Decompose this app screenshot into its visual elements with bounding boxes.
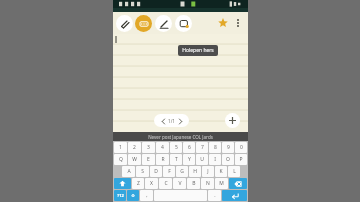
staticText: 8 (214, 144, 217, 151)
button[interactable]: T (170, 154, 182, 165)
staticText: P (239, 156, 243, 163)
button[interactable]: 9 (222, 142, 234, 153)
staticText: E (147, 156, 150, 163)
staticText: N (206, 180, 210, 187)
button[interactable]: N (201, 178, 214, 189)
button[interactable]: Favorite (215, 15, 231, 31)
button[interactable]: Eraser (116, 15, 133, 32)
staticText: 9 (227, 144, 230, 151)
button[interactable]: Symbols (114, 190, 126, 201)
button[interactable]: Q (114, 154, 127, 165)
staticText: . (214, 192, 216, 199)
button[interactable]: H (189, 166, 201, 177)
button[interactable]: O (222, 154, 234, 165)
staticText: 4 (161, 144, 164, 151)
staticText: V (178, 180, 182, 187)
button[interactable]: G (176, 166, 188, 177)
button[interactable]: U (196, 154, 208, 165)
staticText: J (207, 168, 209, 175)
button[interactable]: Next page (175, 116, 185, 126)
button[interactable]: W (128, 154, 141, 165)
button[interactable]: R (156, 154, 169, 165)
staticText: A (127, 168, 131, 175)
staticText: Y (188, 156, 191, 163)
staticText: 1/1 (168, 118, 175, 124)
button[interactable]: Previous page (158, 116, 168, 126)
button[interactable]: 8 (209, 142, 221, 153)
staticText: U (200, 156, 204, 163)
staticText: Z (137, 180, 140, 187)
staticText: ⚙ (131, 193, 135, 198)
button[interactable]: J (202, 166, 214, 177)
button[interactable]: Note (175, 15, 192, 32)
button[interactable]: 2 (128, 142, 141, 153)
button[interactable]: L (228, 166, 240, 177)
button[interactable]: More options (231, 16, 245, 30)
staticText: F (168, 168, 171, 175)
staticText: L (233, 168, 236, 175)
button[interactable]: M (215, 178, 228, 189)
staticText: D (154, 168, 158, 175)
button[interactable]: Pen (155, 15, 172, 32)
staticText: 1 (119, 144, 122, 151)
button[interactable]: 4 (156, 142, 169, 153)
button[interactable]: V (173, 178, 186, 189)
button[interactable]: P (235, 154, 247, 165)
staticText: , (146, 192, 148, 199)
button[interactable]: X (145, 178, 158, 189)
button[interactable]: 0 (235, 142, 247, 153)
button[interactable]: 7 (196, 142, 208, 153)
staticText: B (192, 180, 196, 187)
staticText: 7 (201, 144, 204, 151)
button[interactable]: B (187, 178, 200, 189)
button[interactable]: Y (183, 154, 195, 165)
staticText: T (175, 156, 178, 163)
staticText: K (219, 168, 223, 175)
button[interactable]: Enter (222, 190, 247, 201)
button[interactable]: A (122, 166, 135, 177)
staticText: O (226, 156, 230, 163)
button[interactable]: K (215, 166, 227, 177)
staticText: ?12 (117, 193, 124, 198)
button[interactable]: 5 (170, 142, 182, 153)
button[interactable]: E (142, 154, 155, 165)
button[interactable]: 1 (114, 142, 127, 153)
button[interactable]: Add page (225, 113, 240, 128)
button[interactable]: F (163, 166, 175, 177)
button[interactable]: C (159, 178, 172, 189)
staticText: G (180, 168, 184, 175)
staticText: X (150, 180, 153, 187)
staticText: W (132, 156, 137, 163)
button[interactable]: Language (127, 190, 139, 201)
staticText: S (141, 168, 144, 175)
button[interactable]: S (136, 166, 149, 177)
staticText: 0 (240, 144, 243, 151)
button[interactable]: D (150, 166, 162, 177)
button[interactable]: Backspace (229, 178, 247, 189)
button[interactable]: Shift (114, 178, 131, 189)
staticText: R (161, 156, 165, 163)
staticText: Never post Japanese COL Jards (148, 134, 213, 140)
staticText: H (193, 168, 197, 175)
button[interactable]: Z (132, 178, 144, 189)
staticText: 6 (188, 144, 191, 151)
staticText: 3 (147, 144, 150, 151)
button[interactable]: 3 (142, 142, 155, 153)
button[interactable]: I (209, 154, 221, 165)
button[interactable]: 6 (183, 142, 195, 153)
button[interactable]: , (140, 190, 153, 201)
staticText: 2 (133, 144, 136, 151)
button[interactable]: . (208, 190, 221, 201)
staticText: M (219, 180, 224, 187)
staticText: Q (119, 156, 123, 163)
staticText: Holepen hers (182, 47, 214, 54)
staticText: C (164, 180, 168, 187)
staticText: I (214, 156, 216, 163)
button[interactable]: Text tool (135, 15, 152, 32)
staticText: 5 (175, 144, 178, 151)
